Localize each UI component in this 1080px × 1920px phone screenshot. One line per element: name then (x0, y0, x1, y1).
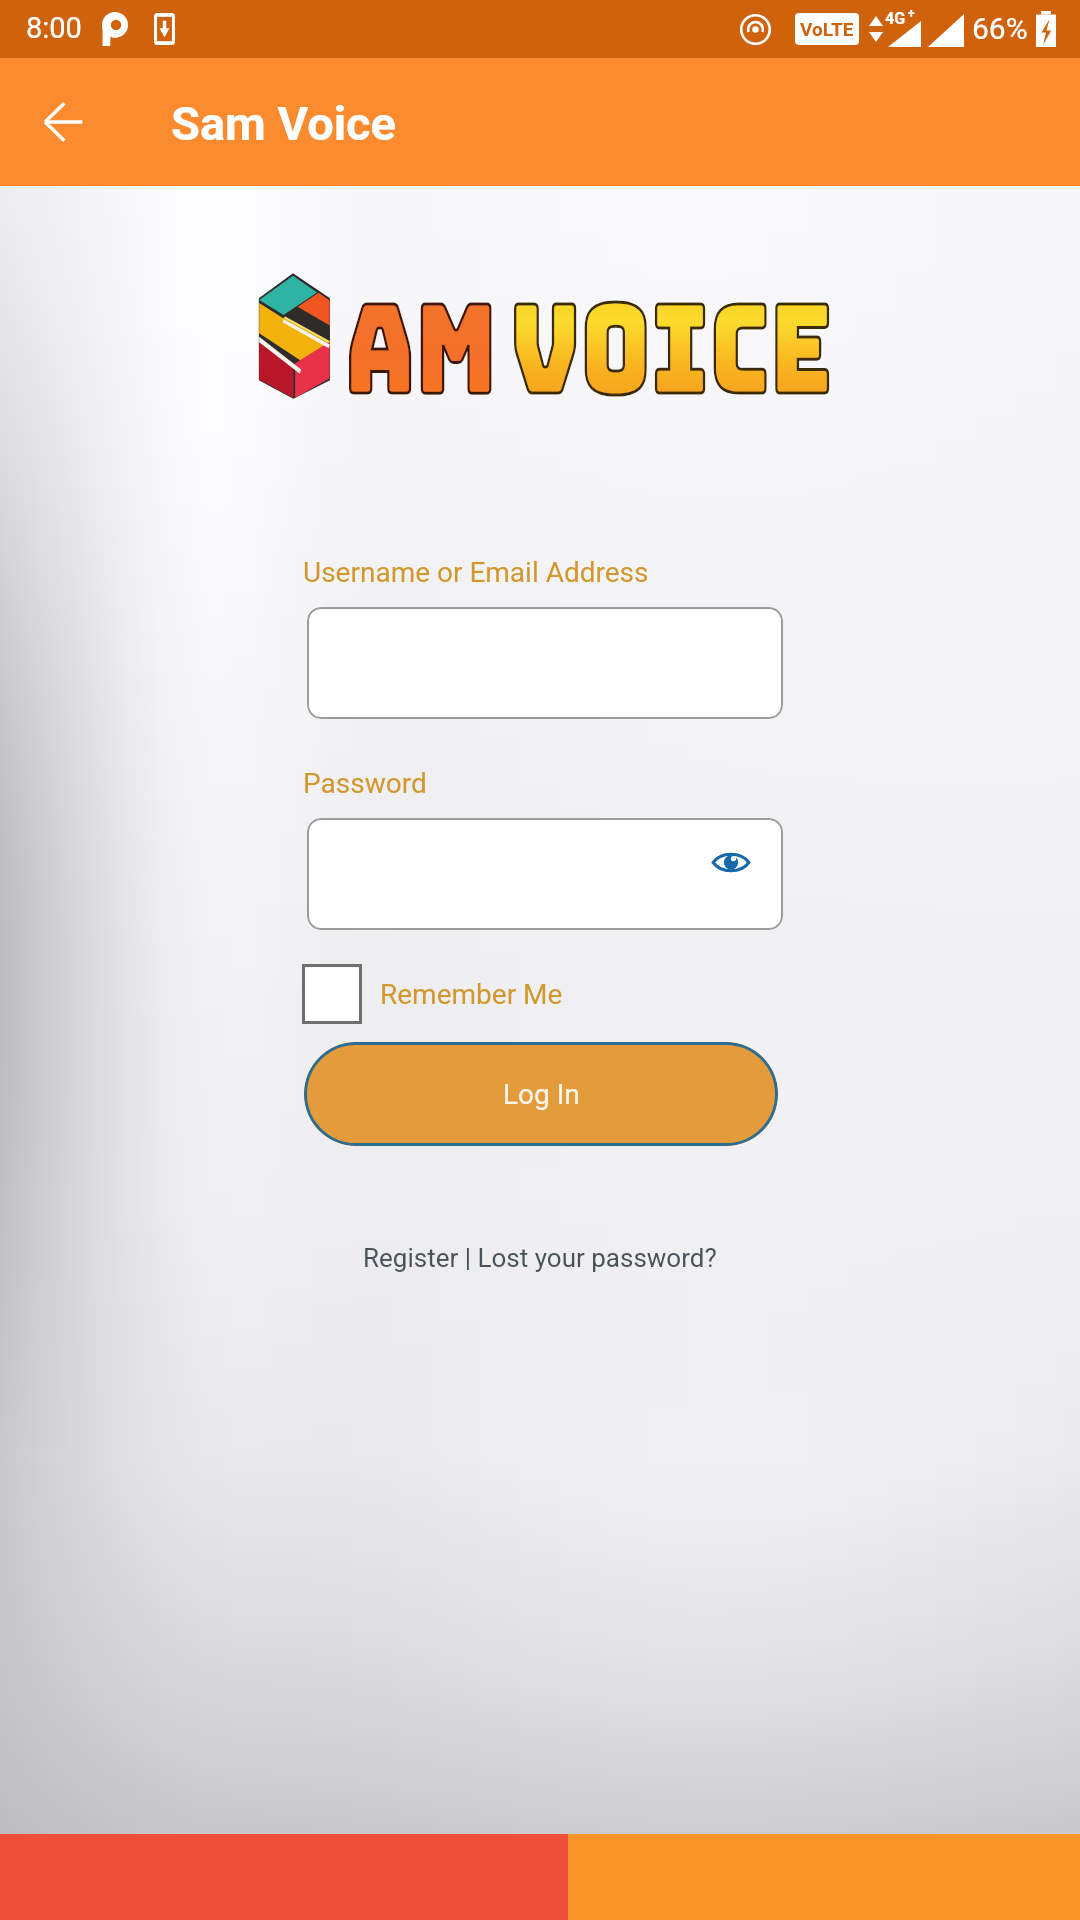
staticText: Remember Me (380, 978, 563, 1011)
staticText: 4G (885, 9, 906, 28)
staticText: 8:00 (26, 11, 82, 45)
button[interactable]: Back (28, 87, 98, 157)
staticText: Log In (503, 1078, 580, 1111)
staticText: + (908, 7, 915, 21)
button[interactable]: Password field (307, 818, 783, 930)
staticText: AM (345, 268, 497, 408)
staticText: AM (345, 268, 497, 408)
staticText: Username or Email Address (303, 556, 649, 589)
button[interactable]: Log In (304, 1042, 778, 1146)
staticText: VOICE (510, 268, 833, 408)
staticText: Password (303, 767, 427, 800)
staticText: VOICE (510, 268, 833, 408)
button[interactable]: Remember Me (302, 963, 563, 1025)
staticText: VoLTE (800, 18, 854, 40)
button[interactable]: Username or Email Address field (307, 607, 783, 719)
button[interactable]: Register | Lost your password? (363, 1243, 717, 1273)
staticText: Sam Voice (171, 96, 396, 151)
staticText: R (954, 30, 964, 48)
button[interactable]: Show password (705, 838, 757, 886)
staticText: 66% (972, 11, 1028, 46)
